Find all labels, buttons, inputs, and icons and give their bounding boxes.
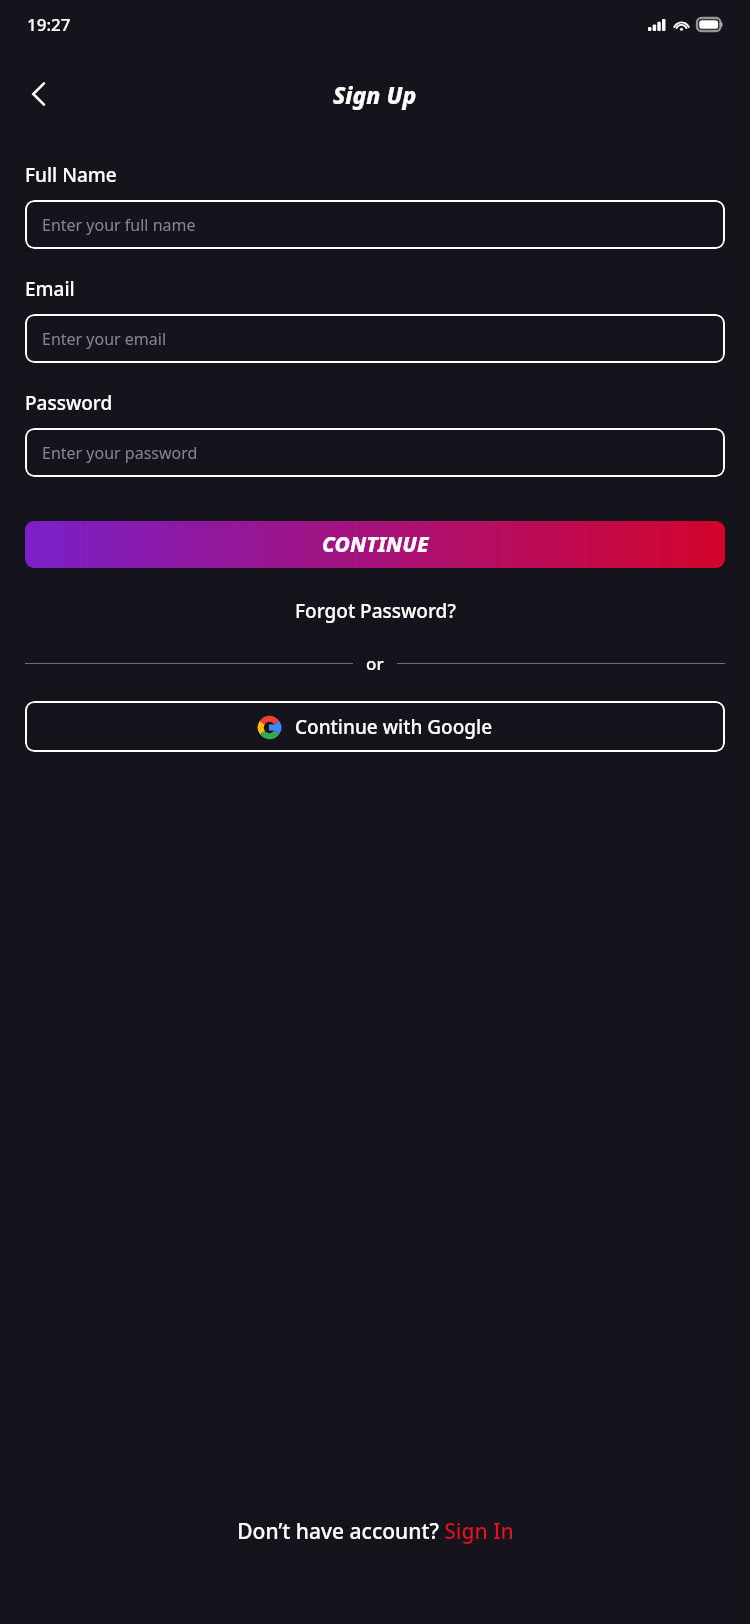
- staticText: Enter your full name: [42, 214, 196, 236]
- button[interactable]: Back: [16, 72, 60, 116]
- staticText: Enter your password: [42, 442, 198, 464]
- staticText: Email: [25, 276, 75, 302]
- staticText: Enter your email: [42, 328, 167, 350]
- button[interactable]: CONTINUE: [25, 521, 725, 568]
- button[interactable]: Continue with Google: [25, 701, 725, 752]
- staticText: Forgot Password?: [295, 598, 456, 624]
- staticText: Full Name: [25, 162, 117, 188]
- staticText: 19:27: [27, 13, 71, 36]
- button[interactable]: Forgot Password?: [287, 594, 464, 628]
- staticText: or: [366, 652, 384, 675]
- button[interactable]: Enter your password: [25, 428, 725, 477]
- staticText: Continue with Google: [295, 714, 493, 740]
- staticText: CONTINUE: [322, 530, 429, 559]
- staticText: Don’t have account? Sign In: [237, 1517, 514, 1546]
- staticText: Sign Up: [333, 79, 417, 110]
- button[interactable]: Enter your email: [25, 314, 725, 363]
- button[interactable]: Don’t have account? Sign In: [227, 1511, 524, 1552]
- button[interactable]: Enter your full name: [25, 200, 725, 249]
- staticText: Password: [25, 390, 113, 416]
